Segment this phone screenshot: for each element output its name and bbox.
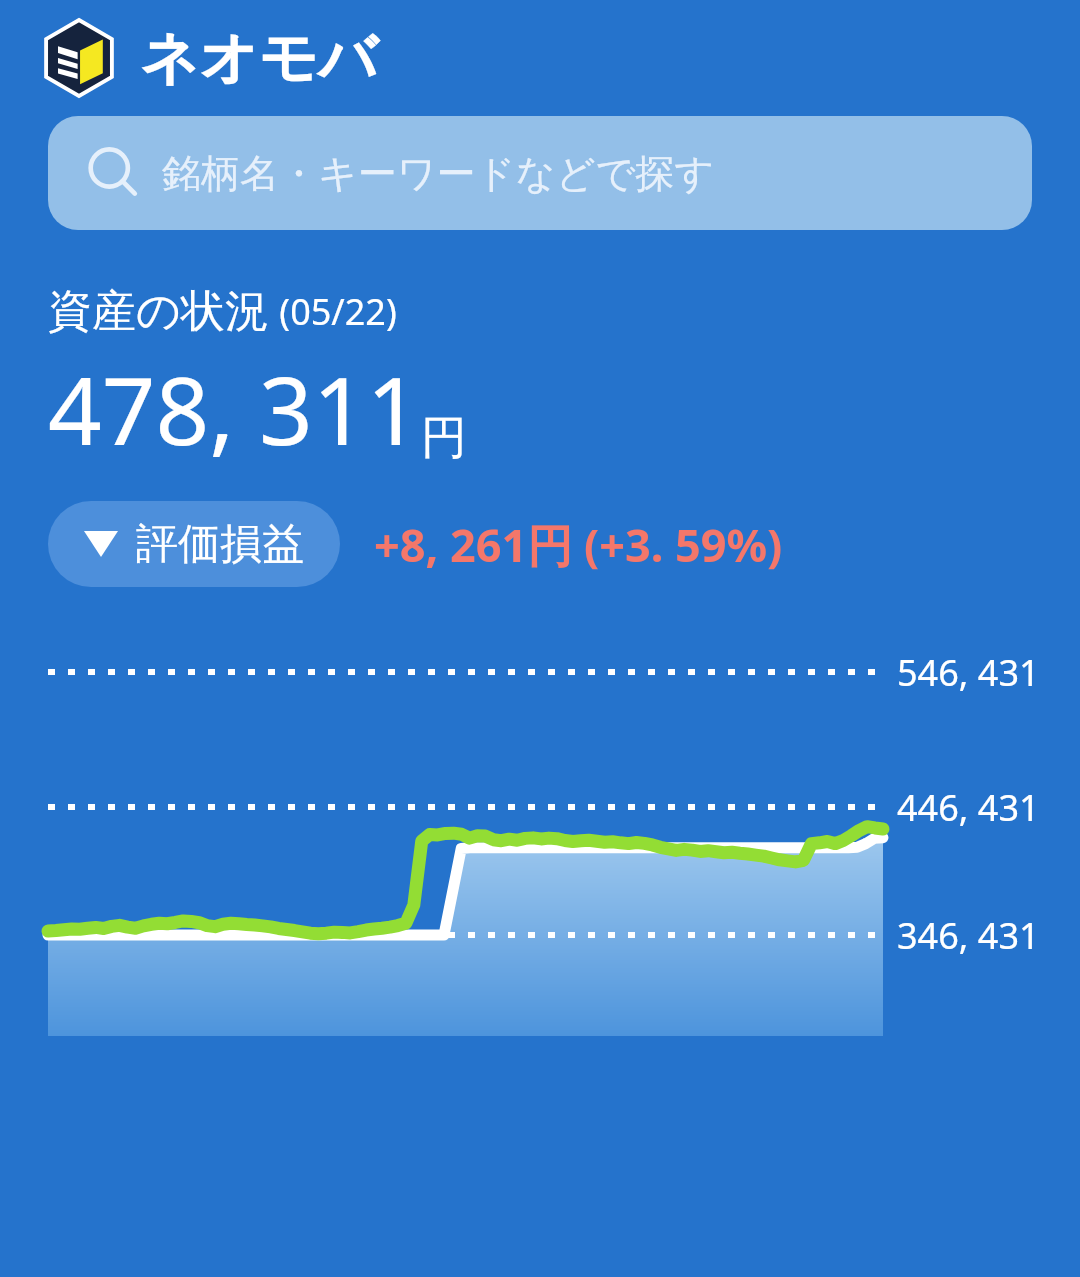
staticText: 346, 431 <box>897 911 1040 960</box>
staticText: 円 <box>421 409 467 467</box>
staticText: 446, 431 <box>897 783 1040 832</box>
staticText: 評価損益 <box>136 518 304 571</box>
staticText: 478, 311 <box>48 345 421 473</box>
button[interactable]: 評価損益 <box>48 501 340 587</box>
staticText: 546, 431 <box>897 648 1040 697</box>
staticText: +8, 261円 (+3. 59%) <box>374 514 783 575</box>
staticText: ネオモバ <box>140 22 378 95</box>
staticText: (05/22) <box>270 287 397 336</box>
other: Neomoba logo <box>44 20 114 96</box>
staticText: 資産の状況 <box>48 284 270 339</box>
staticText: 銘柄名・キーワードなどで探す <box>162 149 715 198</box>
button[interactable]: 銘柄名・キーワードなどで探す <box>48 116 1032 230</box>
